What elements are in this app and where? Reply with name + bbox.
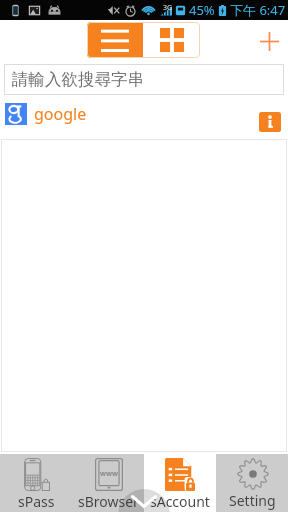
button[interactable]: Setting	[216, 454, 288, 512]
staticText: sAccount	[150, 492, 210, 511]
button[interactable]: sAccount	[144, 454, 216, 512]
staticText: 請輸入欲搜尋字串	[12, 69, 144, 90]
button[interactable]: google	[0, 95, 288, 133]
button[interactable]: Grid view	[143, 22, 200, 58]
staticText: www	[100, 469, 118, 479]
staticText: 下午 6:47	[230, 1, 286, 19]
button[interactable]: Hide navigation	[118, 489, 170, 512]
staticText: google	[34, 103, 87, 125]
staticText: 45%	[189, 1, 215, 19]
staticText: sPass	[18, 492, 55, 511]
staticText: Setting	[229, 491, 276, 510]
staticText: 3G	[163, 3, 173, 13]
button[interactable]: www	[72, 454, 144, 512]
button[interactable]: sPass	[0, 454, 72, 512]
button[interactable]: List view	[87, 22, 143, 58]
button[interactable]: 請輸入欲搜尋字串	[4, 64, 284, 95]
button[interactable]: Info	[259, 112, 281, 132]
staticText: sBrowser	[78, 492, 139, 511]
button[interactable]: Add	[249, 21, 288, 61]
